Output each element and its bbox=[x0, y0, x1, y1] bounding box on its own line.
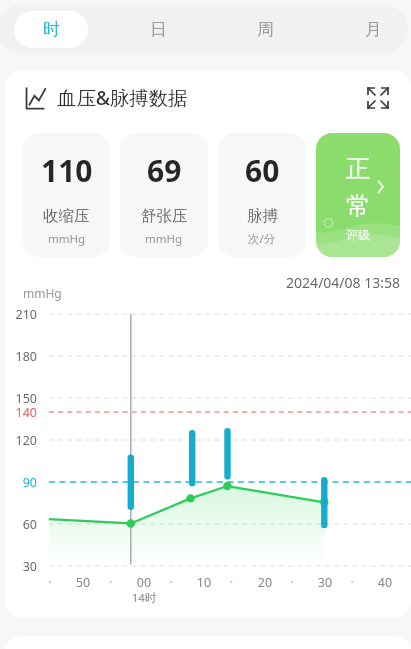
staticText: 69 bbox=[147, 150, 182, 191]
staticText: mmHg bbox=[23, 285, 62, 301]
button[interactable]: 正 bbox=[316, 133, 400, 257]
staticText: 50 bbox=[67, 574, 99, 591]
staticText: mmHg bbox=[48, 231, 86, 247]
staticText: 收缩压 bbox=[43, 206, 90, 226]
staticText: 30 bbox=[11, 558, 37, 575]
button[interactable]: 69 bbox=[120, 133, 208, 257]
staticText: 110 bbox=[41, 150, 93, 191]
button[interactable]: Fullscreen bbox=[366, 86, 390, 110]
staticText: 正 bbox=[346, 153, 371, 184]
staticText: 40 bbox=[369, 574, 401, 591]
staticText: 月 bbox=[365, 19, 382, 40]
staticText: 140 bbox=[11, 404, 37, 421]
staticText: 次/分 bbox=[248, 231, 276, 247]
staticText: 14时 bbox=[126, 590, 162, 606]
staticText: 10 bbox=[188, 574, 220, 591]
staticText: 180 bbox=[11, 348, 37, 365]
staticText: 常 bbox=[346, 190, 371, 221]
staticText: mmHg bbox=[145, 231, 183, 247]
staticText: 周 bbox=[257, 19, 274, 40]
staticText: 血压&脉搏数据 bbox=[57, 84, 188, 110]
staticText: 150 bbox=[11, 390, 37, 407]
button[interactable]: 日 bbox=[123, 11, 193, 48]
staticText: 60 bbox=[11, 516, 37, 533]
staticText: 2024/04/08 13:58 bbox=[276, 273, 400, 292]
staticText: 评级 bbox=[346, 227, 370, 242]
button[interactable]: 时 bbox=[14, 11, 88, 48]
staticText: 20 bbox=[249, 574, 281, 591]
staticText: 90 bbox=[11, 474, 37, 491]
button[interactable]: 周 bbox=[230, 11, 300, 48]
staticText: 舒张压 bbox=[141, 206, 188, 226]
staticText: 210 bbox=[11, 306, 37, 323]
staticText: 120 bbox=[11, 432, 37, 449]
button[interactable]: 月 bbox=[338, 11, 408, 48]
staticText: 00 bbox=[128, 574, 160, 591]
button[interactable]: 110 bbox=[23, 133, 110, 257]
staticText: 脉搏 bbox=[247, 206, 278, 226]
button[interactable]: 60 bbox=[218, 133, 306, 257]
staticText: 日 bbox=[150, 19, 167, 40]
staticText: 时 bbox=[43, 19, 60, 40]
staticText: 60 bbox=[245, 150, 280, 191]
staticText: 30 bbox=[309, 574, 341, 591]
